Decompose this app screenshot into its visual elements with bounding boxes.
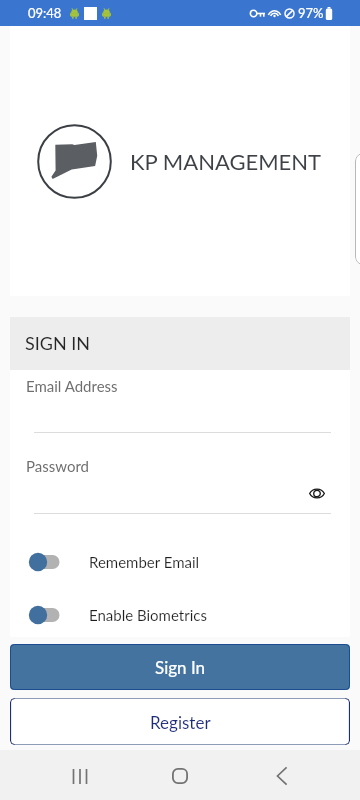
staticText: Password [26,457,89,475]
staticText: Sign In [155,657,206,677]
staticText: Remember Email [89,553,200,571]
button[interactable]: Remember Email [10,542,350,582]
button[interactable]: Sign In [10,644,350,690]
button[interactable]: Home [156,752,204,800]
staticText: SIGN IN [25,332,91,354]
button[interactable]: Show password [305,481,329,505]
staticText: 97% [298,5,324,21]
staticText: Enable Biometrics [89,606,207,624]
staticText: Email Address [26,377,118,395]
staticText: 09:48 [28,5,62,21]
button[interactable]: Recents [56,752,104,800]
button[interactable]: Back [257,752,305,800]
button[interactable]: Enable Biometrics [10,595,350,635]
button[interactable]: Register [10,698,350,745]
staticText: Register [150,712,211,732]
staticText: KP MANAGEMENT [130,148,322,174]
